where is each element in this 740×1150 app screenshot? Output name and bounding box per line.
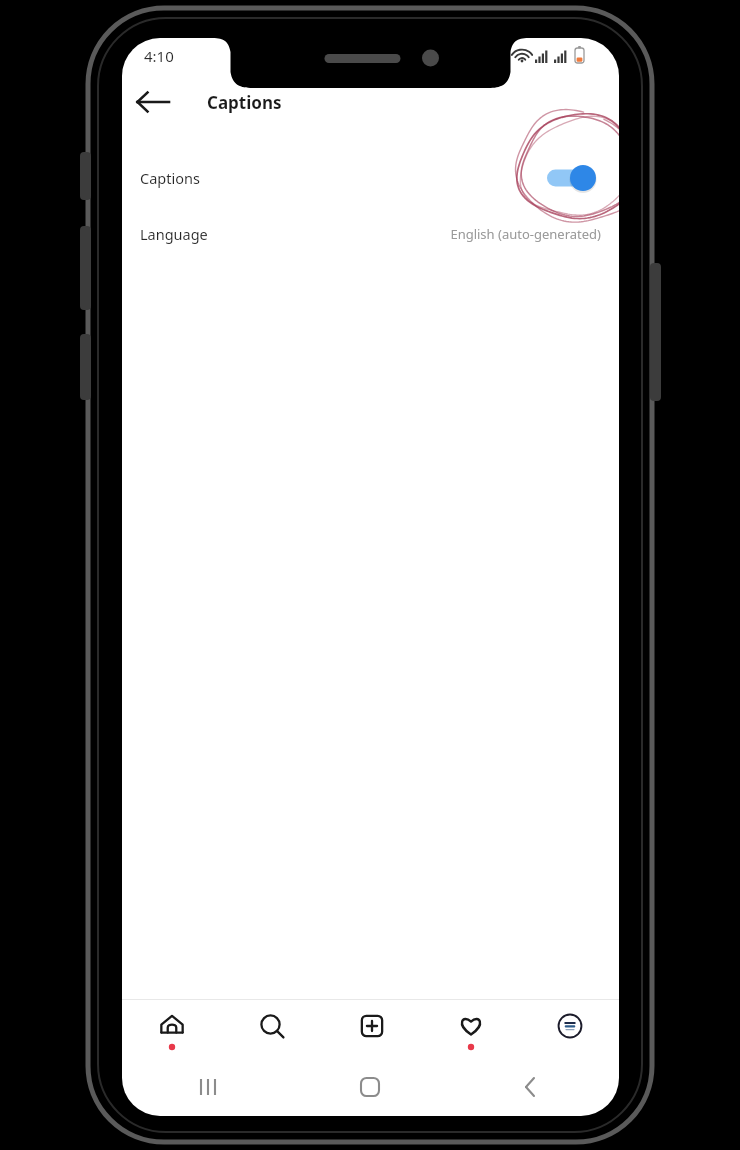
- staticText: English (auto-generated): [450, 225, 601, 243]
- button[interactable]: Captions toggle, on: [545, 161, 599, 195]
- button[interactable]: Language: [122, 206, 619, 262]
- staticText: Captions: [140, 168, 200, 188]
- button[interactable]: Create: [322, 1000, 421, 1058]
- button[interactable]: Activity: [421, 1000, 520, 1058]
- button[interactable]: Captions: [122, 150, 619, 206]
- staticText: 4:10: [144, 46, 174, 66]
- button[interactable]: Home: [122, 1000, 222, 1058]
- button[interactable]: Back: [128, 77, 178, 127]
- button[interactable]: Recent apps: [184, 1063, 232, 1111]
- staticText: Captions: [207, 91, 282, 114]
- button[interactable]: Search: [222, 1000, 322, 1058]
- button[interactable]: Back: [508, 1063, 556, 1111]
- staticText: Language: [140, 224, 208, 244]
- button[interactable]: Profile: [520, 1000, 619, 1058]
- button[interactable]: Home: [346, 1063, 394, 1111]
